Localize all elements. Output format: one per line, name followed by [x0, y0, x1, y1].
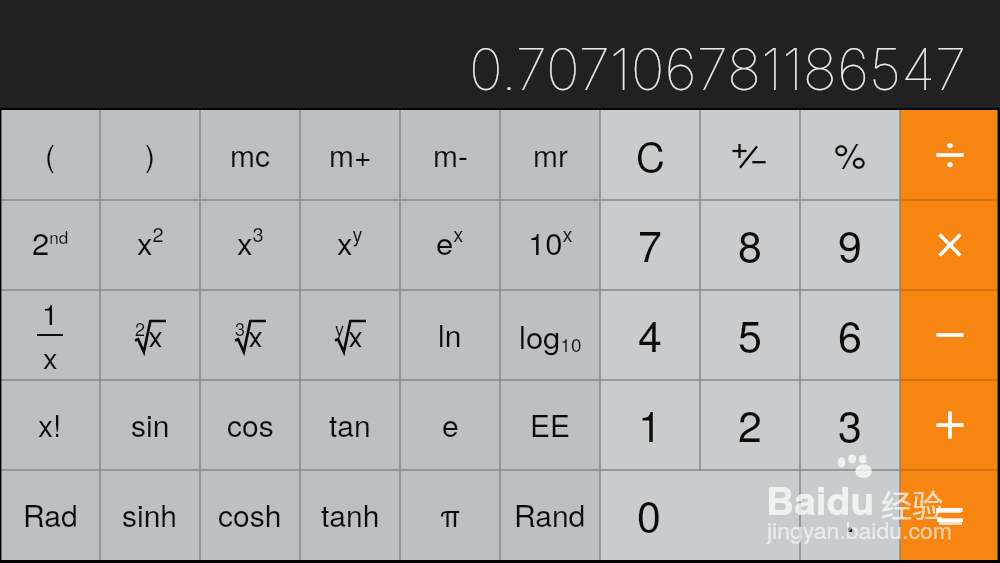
button[interactable]: 0 [600, 470, 800, 560]
button[interactable]: percent [800, 110, 900, 200]
staticText: x [248, 314, 263, 347]
staticText: 2 [135, 315, 146, 341]
button[interactable]: equals [900, 470, 1000, 560]
button[interactable]: x cubed [200, 200, 300, 290]
staticText: 0.707106781186547 [469, 35, 967, 104]
staticText: y [335, 315, 344, 341]
staticText: x3 [237, 219, 264, 264]
button[interactable]: memory add [300, 110, 400, 200]
button[interactable]: 5 [700, 290, 800, 380]
button[interactable]: decimal point [800, 470, 900, 560]
button[interactable]: plus minus sign change [700, 110, 800, 200]
staticText: 8 [738, 213, 762, 275]
staticText: x [348, 314, 363, 347]
staticText: ex [436, 219, 464, 264]
staticText: 6 [838, 303, 862, 365]
button[interactable]: one divided by x [0, 290, 100, 380]
button[interactable]: tangent [300, 380, 400, 470]
staticText: xy [337, 219, 363, 264]
button[interactable]: factorial [0, 380, 100, 470]
staticText: 1 [638, 393, 662, 455]
button[interactable]: cosine [200, 380, 300, 470]
staticText: jingyan.baidu.com [767, 513, 952, 546]
staticText: % [834, 128, 867, 180]
staticText: Baidu [766, 471, 875, 527]
staticText: mr [533, 133, 568, 176]
staticText: x [43, 336, 58, 378]
button[interactable]: log base ten [500, 290, 600, 380]
button[interactable]: 3 [800, 380, 900, 470]
button[interactable]: y-th root [300, 290, 400, 380]
staticText: Rand [514, 493, 586, 536]
staticText: 7 [638, 213, 662, 275]
staticText: ln [438, 313, 462, 356]
staticText: sin [131, 403, 170, 446]
button[interactable]: x to the power y [300, 200, 400, 290]
button[interactable]: sine [100, 380, 200, 470]
staticText: C [636, 126, 665, 183]
staticText: 3 [235, 315, 246, 341]
staticText: sinh [122, 493, 178, 536]
staticText: m+ [329, 133, 372, 176]
staticText: 3 [838, 393, 862, 455]
staticText: 4 [638, 303, 662, 365]
staticText: x2 [137, 219, 164, 264]
staticText: 1 [42, 292, 59, 334]
staticText: 0 [637, 483, 661, 545]
button[interactable]: random number [500, 470, 600, 560]
button[interactable]: minus [900, 290, 1000, 380]
button[interactable]: memory subtract [400, 110, 500, 200]
button[interactable]: cube root [200, 290, 300, 380]
button[interactable]: 8 [700, 200, 800, 290]
staticText: 2nd [32, 219, 69, 263]
button[interactable]: multiply [900, 200, 1000, 290]
staticText: 9 [838, 213, 862, 275]
button[interactable]: divide [900, 110, 1000, 200]
button[interactable]: plus [900, 380, 1000, 470]
button[interactable]: 2 [700, 380, 800, 470]
staticText: 2 [738, 393, 762, 455]
staticText: Rad [23, 493, 78, 536]
button[interactable]: 4 [600, 290, 700, 380]
button[interactable]: square root [100, 290, 200, 380]
button[interactable]: memory clear [200, 110, 300, 200]
button[interactable]: clear [600, 110, 700, 200]
button[interactable]: ten to the power x [500, 200, 600, 290]
button[interactable]: euler number e [400, 380, 500, 470]
staticText: 10x [528, 219, 573, 264]
staticText: tanh [321, 493, 380, 536]
staticText: 经验 [881, 481, 943, 526]
button[interactable]: 7 [600, 200, 700, 290]
button[interactable]: x squared [100, 200, 200, 290]
button[interactable]: hyperbolic sine [100, 470, 200, 560]
staticText: ) [145, 133, 155, 176]
button[interactable]: hyperbolic tangent [300, 470, 400, 560]
button[interactable]: hyperbolic cosine [200, 470, 300, 560]
staticText: m- [433, 133, 468, 176]
staticText: cosh [218, 493, 282, 536]
staticText: . [844, 483, 856, 545]
button[interactable]: memory recall [500, 110, 600, 200]
staticText: EE [530, 403, 571, 446]
staticText: cos [227, 403, 274, 446]
button[interactable]: 9 [800, 200, 900, 290]
button[interactable]: 6 [800, 290, 900, 380]
staticText: log10 [519, 313, 582, 358]
button[interactable]: 1 [600, 380, 700, 470]
button[interactable]: pi [400, 470, 500, 560]
staticText: e [442, 403, 459, 446]
staticText: x! [38, 403, 62, 446]
button[interactable]: exponent entry [500, 380, 600, 470]
staticText: tan [329, 403, 371, 446]
staticText: π [440, 493, 461, 536]
staticText: 5 [738, 303, 762, 365]
staticText: ( [45, 133, 55, 176]
button[interactable]: natural logarithm [400, 290, 500, 380]
button[interactable]: left parenthesis [0, 110, 100, 200]
staticText: mc [230, 133, 270, 176]
button[interactable]: e to the power x [400, 200, 500, 290]
staticText: x [148, 314, 163, 347]
button[interactable]: second functions [0, 200, 100, 290]
button[interactable]: right parenthesis [100, 110, 200, 200]
button[interactable]: radians mode [0, 470, 100, 560]
